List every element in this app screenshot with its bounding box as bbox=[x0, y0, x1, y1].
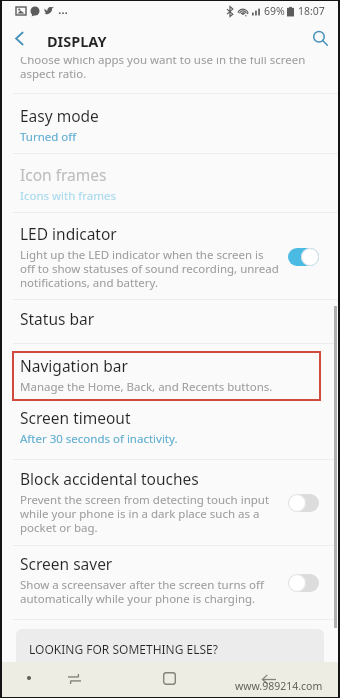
staticText: Block accidental touches bbox=[20, 468, 199, 489]
staticText: Light up the LED indicator when the scre… bbox=[20, 247, 279, 290]
button[interactable]: Navigation bar bbox=[2, 344, 338, 401]
staticText: Show a screensaver after the screen turn… bbox=[20, 577, 264, 606]
staticText: Status bar bbox=[20, 308, 95, 329]
button[interactable]: Toggle bbox=[288, 573, 319, 592]
button[interactable]: Status bar bbox=[2, 300, 338, 343]
button[interactable]: Screen saver bbox=[2, 546, 338, 619]
button[interactable]: Icon frames bbox=[2, 154, 338, 212]
button[interactable]: Search bbox=[302, 20, 338, 57]
staticText: www.989214.com bbox=[235, 679, 323, 693]
staticText: Screen timeout bbox=[20, 407, 131, 428]
button[interactable]: Toggle bbox=[288, 247, 319, 266]
staticText: Easy mode bbox=[20, 105, 99, 126]
button[interactable]: LED indicator bbox=[2, 213, 338, 299]
staticText: Manage the Home, Back, and Recents butto… bbox=[20, 379, 273, 395]
staticText: LED indicator bbox=[20, 223, 117, 244]
staticText: 18:07 bbox=[298, 4, 325, 18]
staticText: After 30 seconds of inactivity. bbox=[20, 431, 178, 447]
button[interactable]: Home bbox=[156, 665, 182, 691]
staticText: Prevent the screen from detecting touch … bbox=[20, 492, 270, 535]
button[interactable]: LOOKING FOR SOMETHING ELSE? bbox=[16, 629, 324, 662]
button[interactable]: Back bbox=[256, 666, 282, 692]
staticText: LOOKING FOR SOMETHING ELSE? bbox=[29, 641, 219, 657]
button[interactable]: Block accidental touches bbox=[2, 460, 338, 545]
button[interactable]: Easy mode bbox=[2, 94, 338, 153]
staticText: DISPLAY bbox=[47, 31, 107, 51]
staticText: Turned off bbox=[20, 129, 77, 145]
button[interactable]: Recents bbox=[61, 666, 87, 692]
button[interactable]: Back bbox=[2, 20, 36, 57]
staticText: Navigation bar bbox=[20, 355, 128, 376]
staticText: Choose which apps you want to use in the… bbox=[20, 57, 306, 81]
staticText: Screen saver bbox=[20, 553, 113, 574]
staticText: Icons with frames bbox=[20, 188, 116, 204]
button[interactable]: Screen timeout bbox=[2, 401, 338, 459]
staticText: Icon frames bbox=[20, 164, 107, 185]
staticText: 69% bbox=[264, 4, 285, 18]
button[interactable]: Toggle bbox=[288, 493, 319, 512]
